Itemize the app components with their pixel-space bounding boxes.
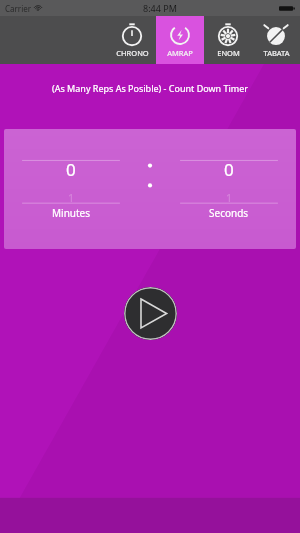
button[interactable]: TABATA: [252, 16, 300, 64]
button[interactable]: 0: [162, 129, 296, 249]
button[interactable]: 0: [4, 129, 138, 249]
button[interactable]: CHRONO: [108, 16, 156, 64]
button[interactable]: Start timer: [124, 287, 177, 340]
staticText: 1: [68, 190, 75, 205]
staticText: Seconds: [209, 206, 249, 220]
staticText: 8:44 PM: [143, 2, 177, 14]
staticText: ENOM: [217, 48, 240, 58]
staticText: TABATA: [263, 48, 290, 58]
staticText: 0: [224, 158, 234, 181]
staticText: AMRAP: [167, 48, 193, 58]
staticText: (As Many Reps As Posible) - Count Down T…: [52, 82, 248, 94]
staticText: Minutes: [52, 206, 91, 220]
staticText: Carrier: [5, 3, 32, 14]
staticText: 0: [66, 158, 76, 181]
button[interactable]: ENOM: [204, 16, 252, 64]
staticText: 1: [226, 190, 233, 205]
button[interactable]: AMRAP: [156, 16, 204, 64]
staticText: CHRONO: [116, 48, 149, 58]
